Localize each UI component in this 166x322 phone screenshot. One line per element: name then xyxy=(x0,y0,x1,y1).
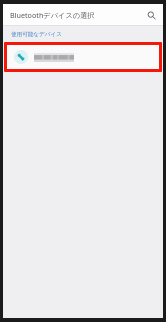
staticText: Bluetoothデバイスの選択 xyxy=(10,10,95,20)
button[interactable]: 検索 xyxy=(143,7,159,23)
staticText: 使用可能なデバイス xyxy=(11,31,62,38)
button[interactable] xyxy=(7,45,159,69)
